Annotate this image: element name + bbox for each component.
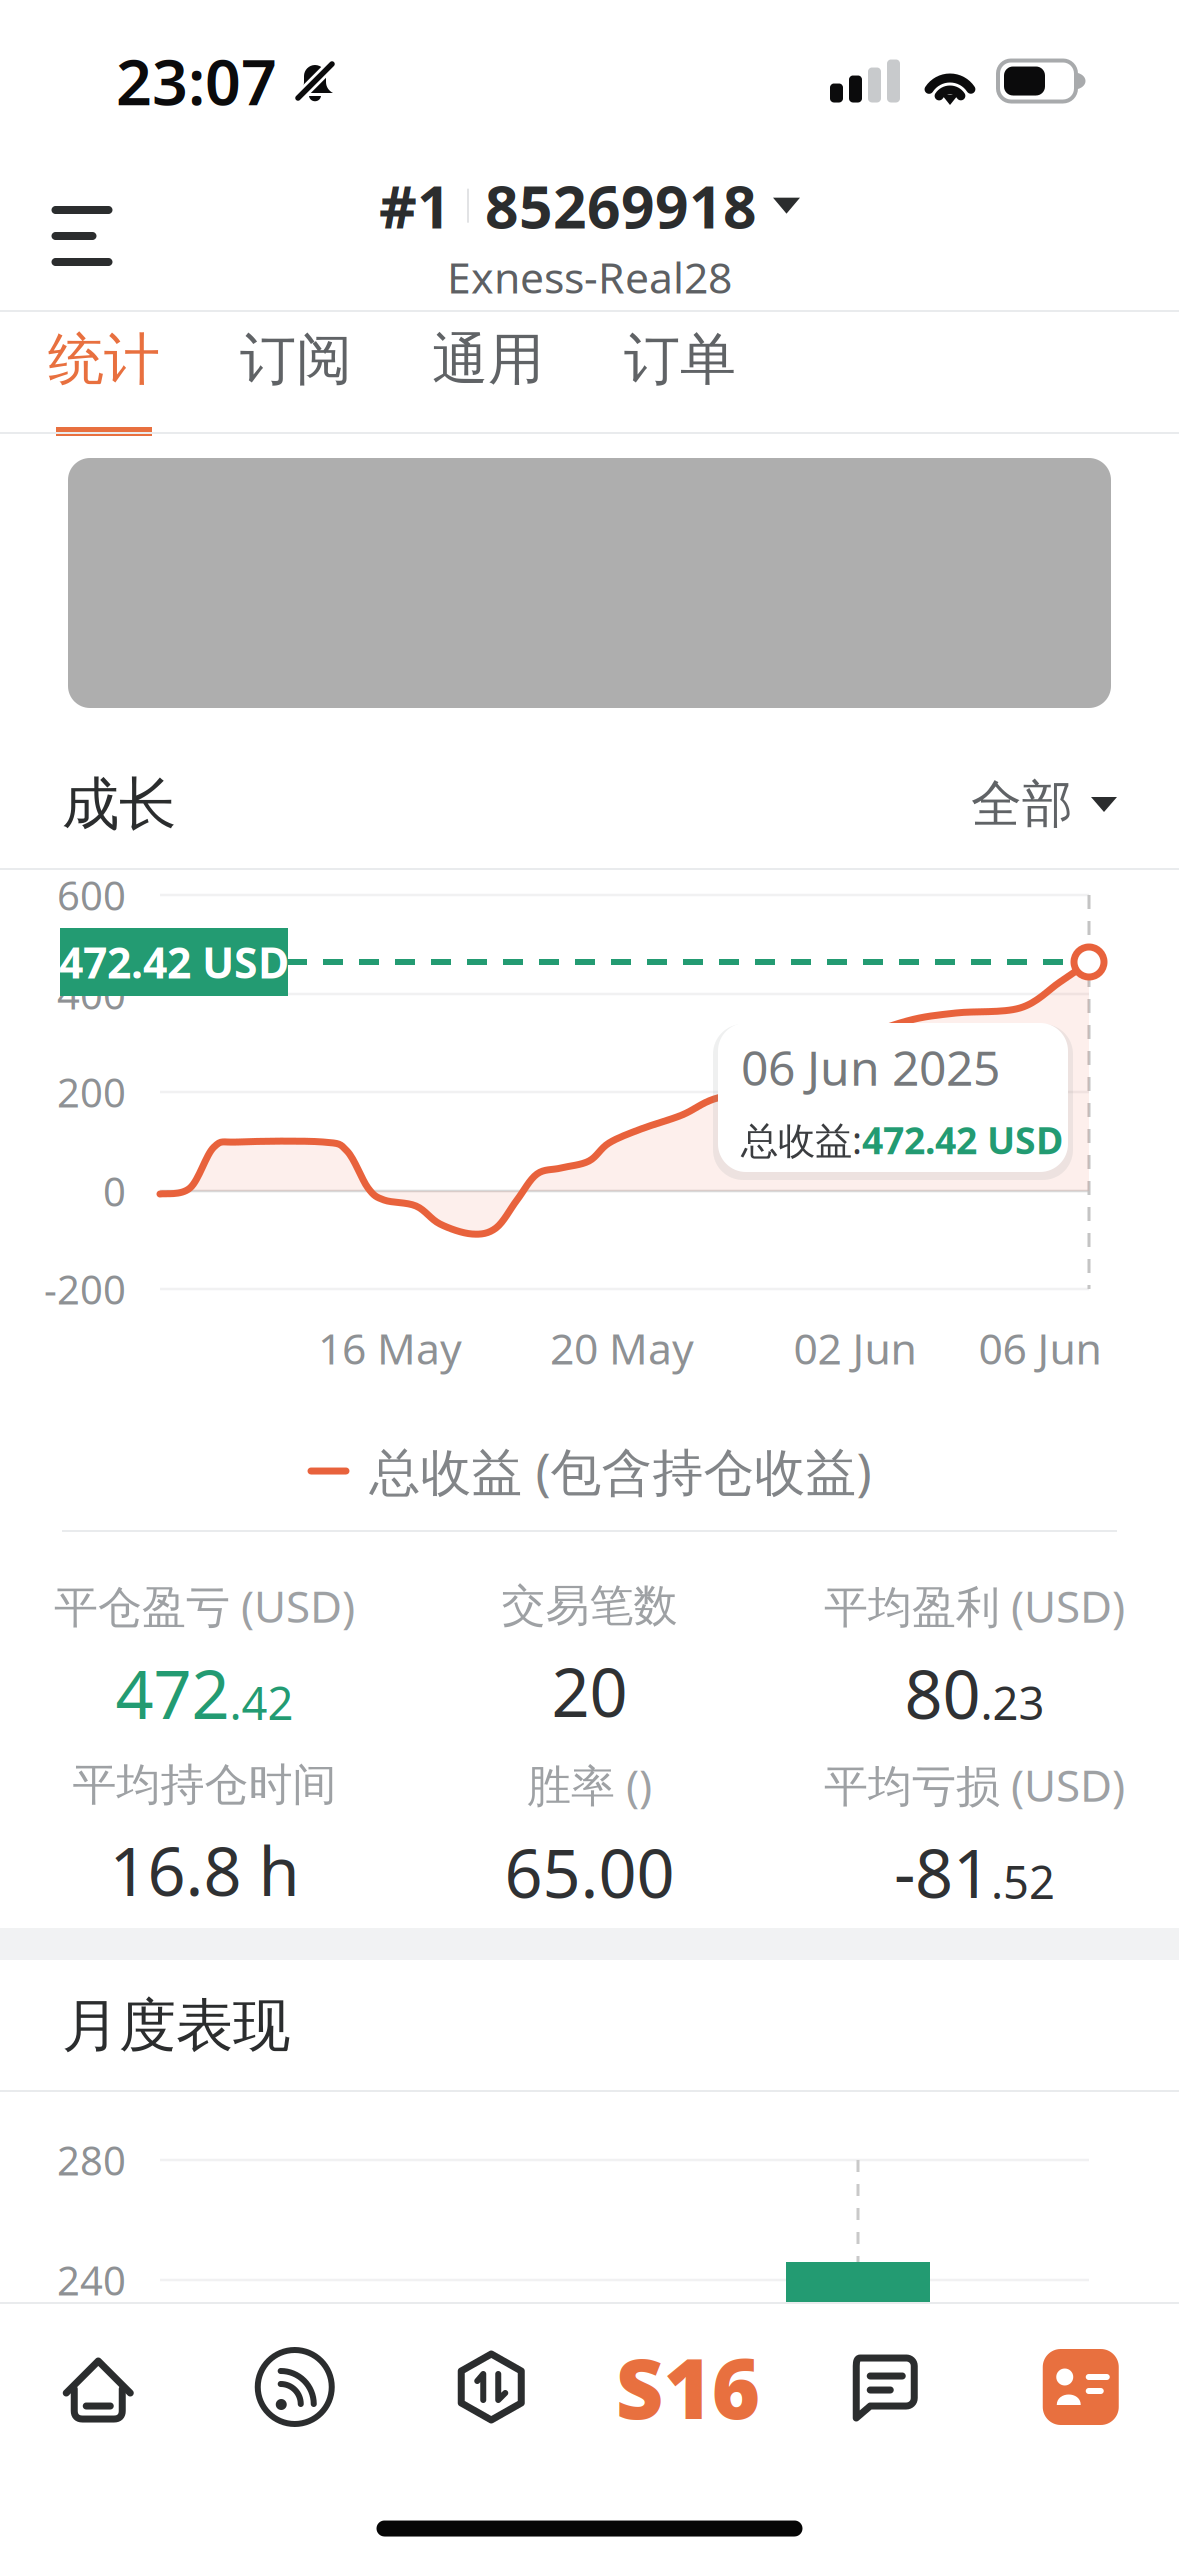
button[interactable]: Promotion banner [0,434,1179,739]
staticText: 平均持仓时间 [72,1758,336,1812]
staticText: 400 [57,967,126,1020]
button[interactable]: 订阅 [200,310,392,436]
staticText: -200 [44,1262,126,1315]
staticText: 月度表现 [62,1991,290,2061]
staticText: .42 [229,1672,293,1732]
staticText: 472.42 USD [59,934,289,990]
staticText: 16 May [318,1320,462,1376]
staticText: 平仓盈亏 (USD) [54,1576,355,1635]
staticText: 平均亏损 (USD) [824,1755,1125,1814]
staticText: 80 [904,1649,980,1737]
staticText: S16 [616,2332,760,2442]
staticText: 20 [551,1647,627,1735]
staticText: 280 [57,2133,126,2186]
button[interactable]: Menu [0,176,142,296]
staticText: 06 Jun [978,1320,1101,1376]
staticText: 472.42 USD [862,1115,1063,1165]
staticText: Exness-Real28 [447,249,732,305]
staticText: 06 Jun 2025 [741,1035,1000,1099]
staticText: 通用 [432,325,544,394]
staticText: 交易笔数 [501,1579,677,1633]
staticText: 0 [103,1164,126,1217]
staticText: 统计 [48,325,160,394]
staticText: #1 [379,167,451,245]
button[interactable]: 通用 [392,310,584,436]
staticText: 20 May [550,1320,694,1376]
button[interactable]: 全部 [971,773,1117,836]
staticText: 成长 [62,769,176,840]
staticText: 600 [57,868,126,921]
staticText: .52 [991,1851,1055,1911]
staticText: 订阅 [240,325,352,394]
staticText: 订单 [624,325,736,394]
button[interactable]: 统计 [8,310,200,436]
button[interactable]: Home [0,2302,196,2472]
staticText: 85269918 [485,167,757,245]
staticText: 总收益: [741,1115,862,1165]
staticText: .23 [980,1672,1044,1732]
staticText: 胜率 () [527,1755,652,1814]
staticText: 472 [115,1649,229,1737]
staticText: 16.8 h [109,1826,299,1914]
staticText: 全部 [971,773,1073,836]
staticText: -81 [894,1828,991,1916]
button[interactable]: Profile [982,2302,1179,2472]
button[interactable]: Trade [393,2302,589,2472]
staticText: 200 [57,1065,126,1118]
staticText: 23:07 [116,39,277,123]
button[interactable]: Messages [786,2302,982,2472]
staticText: 总收益 (包含持仓收益) [369,1437,871,1505]
button[interactable]: #1 [379,167,800,305]
staticText: 65.00 [504,1828,674,1916]
button[interactable]: 订单 [584,310,776,436]
staticText: 240 [57,2253,126,2306]
button[interactable]: S16 [589,2302,786,2472]
staticText: 平均盈利 (USD) [824,1576,1125,1635]
staticText: 02 Jun [793,1320,916,1376]
button[interactable]: Signals [196,2302,393,2472]
